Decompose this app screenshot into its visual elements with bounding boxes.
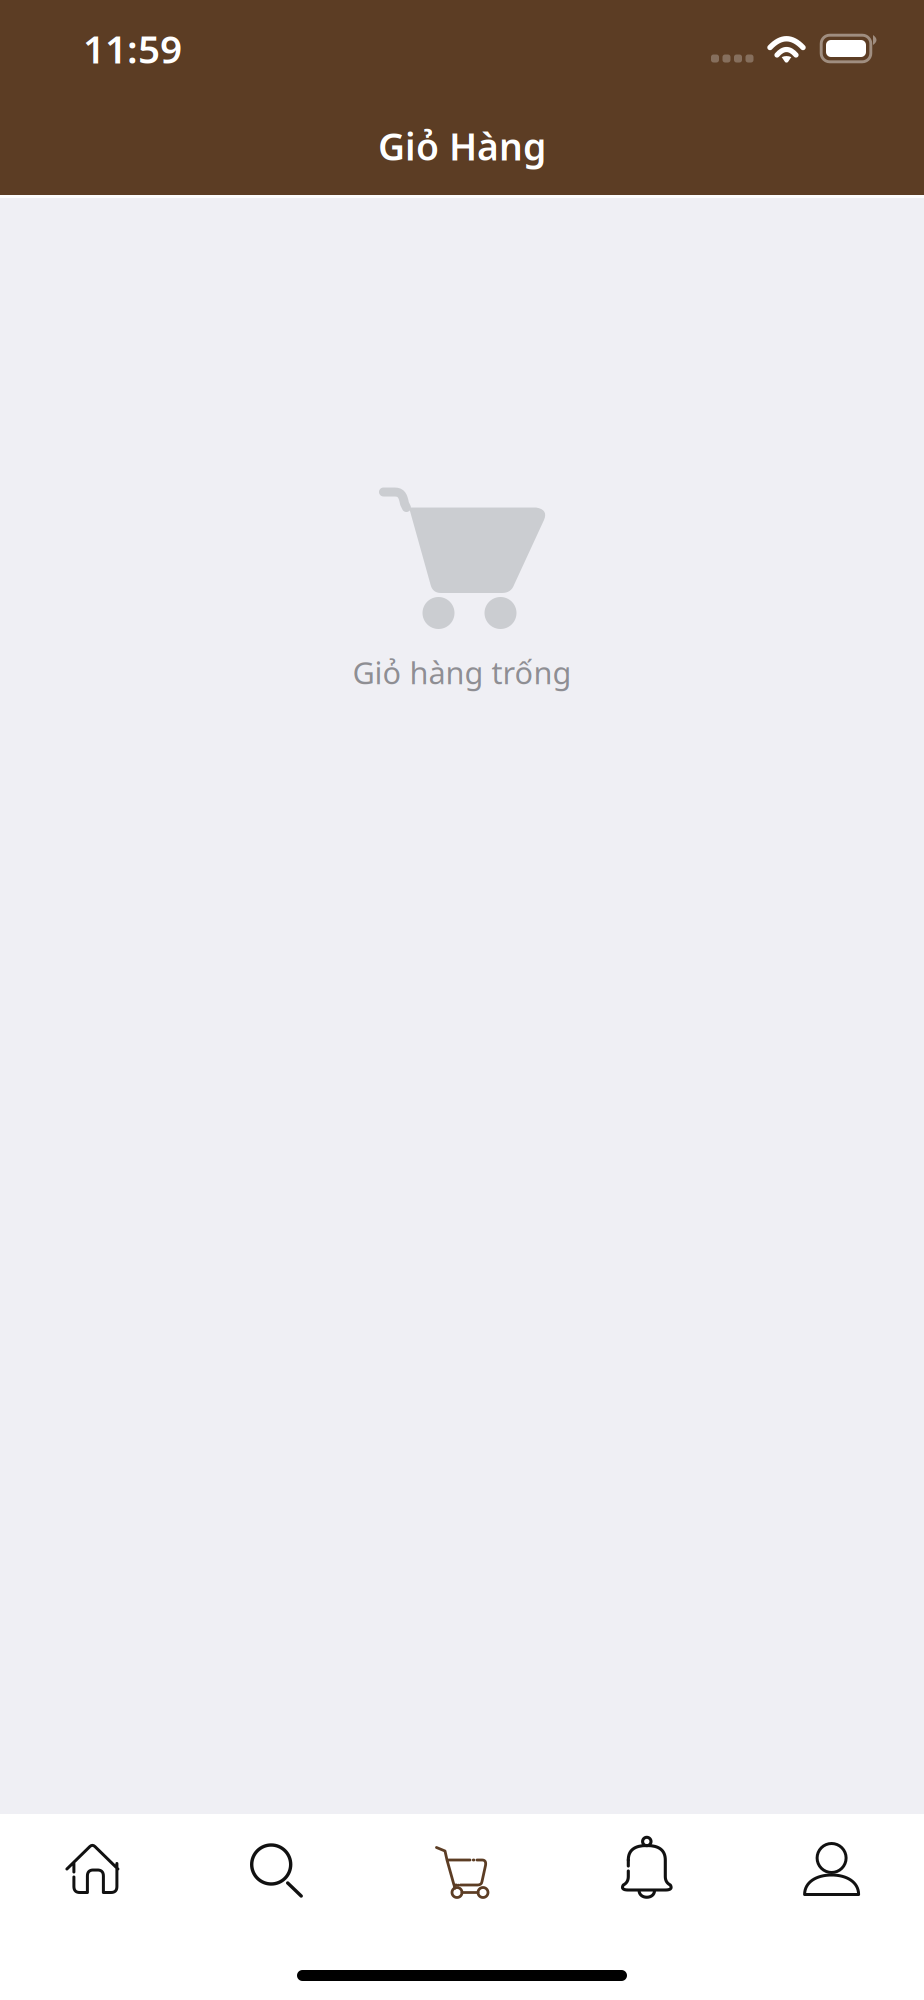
staticText: 11:59 <box>83 23 182 74</box>
staticText: Giỏ hàng trống <box>352 652 571 693</box>
staticText: Giỏ Hàng <box>378 121 546 171</box>
button[interactable]: Search <box>185 1814 370 1924</box>
button[interactable]: Cart <box>370 1814 554 1924</box>
button[interactable]: Profile <box>739 1814 924 1924</box>
button[interactable]: Home <box>0 1814 185 1924</box>
button[interactable]: Notifications <box>554 1814 739 1924</box>
